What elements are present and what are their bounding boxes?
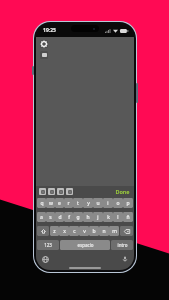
staticText: k [107,214,110,221]
staticText: 123 [44,242,52,248]
staticText: v [83,228,86,235]
staticText: intro [117,242,128,248]
button[interactable]: j [93,212,103,222]
button[interactable]: g [73,212,83,222]
button[interactable]: m [109,226,119,236]
button[interactable]: Format action 1 [39,188,46,195]
staticText: n [102,228,106,235]
button[interactable]: 123 [37,240,59,250]
staticText: d [58,214,62,221]
button[interactable]: r [64,198,73,208]
staticText: 19:25 [43,27,56,34]
button[interactable]: s [46,212,55,222]
staticText: t [77,200,79,207]
staticText: g [76,214,80,221]
button[interactable]: c [69,226,79,236]
button[interactable]: f [64,212,73,222]
button[interactable]: x [59,226,69,236]
button[interactable]: a [37,212,46,222]
button[interactable]: Insert [40,51,48,59]
button[interactable]: h [83,212,93,222]
staticText: o [116,200,120,207]
staticText: p [126,200,130,207]
button[interactable]: b [89,226,99,236]
button[interactable]: p [123,198,133,208]
button[interactable]: Format action 4 [66,188,73,195]
staticText: j [97,214,99,221]
button[interactable]: Dictate [121,255,129,263]
button[interactable]: y [83,198,93,208]
staticText: m [112,228,117,235]
staticText: r [67,200,70,207]
staticText: Done [115,188,130,195]
button[interactable]: Settings [40,40,48,48]
button[interactable]: z [50,226,59,236]
staticText: l [117,214,119,221]
button[interactable]: espacio [60,240,110,250]
button[interactable]: i [103,198,113,208]
button[interactable]: ñ [123,212,133,222]
button[interactable]: Format action 3 [57,188,64,195]
button[interactable]: Shift [37,226,49,236]
button[interactable]: l [113,212,123,222]
button[interactable]: d [55,212,64,222]
staticText: x [63,228,66,235]
staticText: c [73,228,76,235]
button[interactable]: w [46,198,55,208]
staticText: i [107,200,109,207]
staticText: z [53,228,56,235]
staticText: espacio [77,242,94,248]
staticText: s [49,214,52,221]
button[interactable]: Change keyboard [41,255,49,263]
staticText: q [40,200,44,207]
staticText: f [68,214,70,221]
staticText: y [87,200,90,207]
button[interactable]: v [79,226,89,236]
staticText: a [40,214,43,221]
staticText: ñ [126,214,130,221]
button[interactable]: u [93,198,103,208]
button[interactable]: Format action 2 [48,188,55,195]
staticText: b [92,228,96,235]
staticText: w [49,200,53,207]
staticText: e [58,200,61,207]
button[interactable]: o [113,198,123,208]
button[interactable]: Backspace [120,226,133,236]
button[interactable]: t [73,198,83,208]
button[interactable]: e [55,198,64,208]
staticText: h [86,214,90,221]
button[interactable]: intro [111,240,133,250]
button[interactable]: Done [114,188,131,195]
button[interactable]: n [99,226,109,236]
button[interactable]: k [103,212,113,222]
button[interactable]: q [37,198,46,208]
staticText: u [96,200,100,207]
